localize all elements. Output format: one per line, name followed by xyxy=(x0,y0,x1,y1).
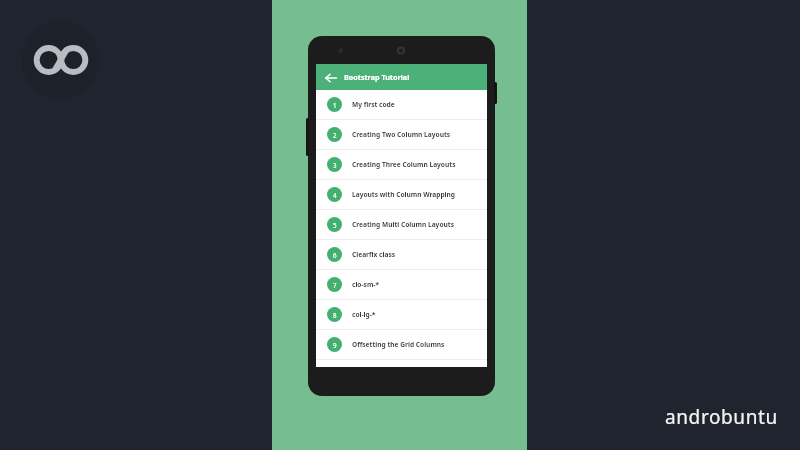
button[interactable]: 2 xyxy=(316,120,487,149)
staticText: Creating Multi Column Layouts xyxy=(352,220,454,229)
other: Androbuntu logo xyxy=(22,21,100,99)
button[interactable]: 9 xyxy=(316,330,487,359)
button[interactable]: Back xyxy=(322,69,339,86)
staticText: Offsetting the Grid Columns xyxy=(352,340,445,349)
button[interactable]: 5 xyxy=(316,210,487,239)
staticText: 6 xyxy=(333,251,337,259)
staticText: 9 xyxy=(333,341,337,349)
button[interactable]: 4 xyxy=(316,180,487,209)
staticText: 1 xyxy=(333,101,337,109)
staticText: col-lg-* xyxy=(352,310,376,319)
staticText: 7 xyxy=(333,281,337,289)
staticText: 2 xyxy=(333,131,337,139)
staticText: Clearfix class xyxy=(352,250,396,259)
staticText: androbuntu xyxy=(665,404,778,430)
button[interactable]: 1 xyxy=(316,90,487,119)
staticText: 4 xyxy=(333,191,337,199)
staticText: Layouts with Column Wrapping xyxy=(352,190,456,199)
staticText: 8 xyxy=(333,311,337,319)
button[interactable]: 7 xyxy=(316,270,487,299)
staticText: 5 xyxy=(333,221,337,229)
staticText: Creating Two Column Layouts xyxy=(352,130,451,139)
staticText: 3 xyxy=(333,161,337,169)
button[interactable]: 3 xyxy=(316,150,487,179)
staticText: Bootstrap Tutorial xyxy=(344,72,410,82)
staticText: clo-sm-* xyxy=(352,280,380,289)
button[interactable]: 6 xyxy=(316,240,487,269)
button[interactable]: 8 xyxy=(316,300,487,329)
staticText: Creating Three Column Layouts xyxy=(352,160,456,169)
staticText: My first code xyxy=(352,100,395,109)
